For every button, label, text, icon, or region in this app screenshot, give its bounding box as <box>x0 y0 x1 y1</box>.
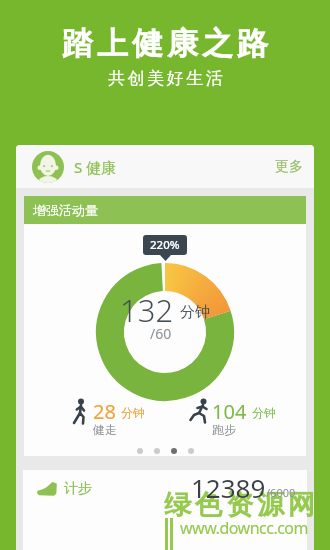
staticText: 共创美好生活 <box>107 68 224 89</box>
button[interactable]: 104 <box>189 398 276 440</box>
button[interactable]: 增强活动量 <box>24 196 306 456</box>
staticText: S 健康 <box>74 157 117 177</box>
staticText: 更多 <box>275 158 303 176</box>
staticText: 分钟 <box>121 405 145 420</box>
staticText: 踏上健康之路 <box>60 24 270 63</box>
staticText: 健走 <box>93 422 117 437</box>
staticText: 104 <box>212 398 247 425</box>
button[interactable]: 计步 <box>23 470 307 550</box>
button[interactable]: 更多 <box>269 152 309 182</box>
staticText: 增强活动量 <box>33 202 98 218</box>
staticText: www.downcc.com <box>180 517 309 539</box>
staticText: 分钟 <box>252 405 276 420</box>
staticText: 绿色资源网 <box>162 488 317 522</box>
staticText: /60 <box>150 324 172 343</box>
staticText: /6000 <box>266 485 296 500</box>
button[interactable]: 28 <box>70 398 145 440</box>
staticText: 跑步 <box>212 422 236 437</box>
staticText: 28 <box>93 398 116 425</box>
staticText: 分钟 <box>180 303 210 322</box>
staticText: 12389 <box>191 470 266 505</box>
button[interactable]: S 健康 <box>16 145 314 188</box>
staticText: 132 <box>120 289 174 331</box>
staticText: 220% <box>150 237 180 253</box>
staticText: 计步 <box>64 480 92 498</box>
